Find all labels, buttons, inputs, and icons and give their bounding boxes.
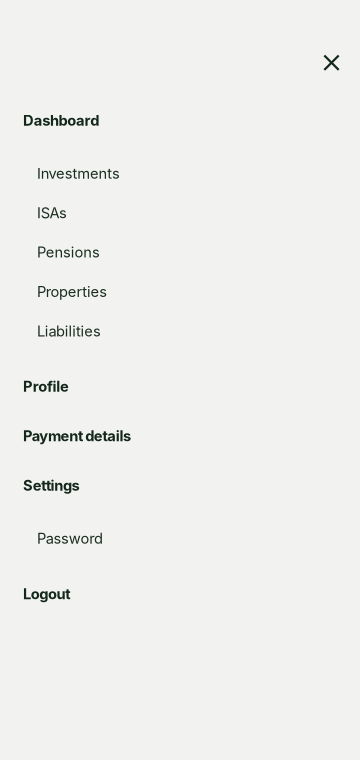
staticText: Settings xyxy=(23,477,80,494)
staticText: Liabilities xyxy=(37,322,101,340)
button[interactable]: Logout xyxy=(0,569,360,619)
staticText: Properties xyxy=(37,283,107,300)
staticText: Pensions xyxy=(37,243,100,261)
button[interactable]: Password xyxy=(0,519,360,558)
button[interactable]: Close xyxy=(309,41,353,85)
button[interactable]: ISAs xyxy=(0,193,360,233)
button[interactable]: Dashboard xyxy=(0,96,360,145)
staticText: Logout xyxy=(23,585,70,603)
staticText: Dashboard xyxy=(23,112,99,129)
staticText: Payment details xyxy=(23,427,131,445)
button[interactable]: Profile xyxy=(0,362,360,411)
button[interactable]: Settings xyxy=(0,461,360,510)
staticText: Password xyxy=(37,530,103,547)
staticText: Profile xyxy=(23,378,69,395)
button[interactable]: Payment details xyxy=(0,411,360,461)
staticText: ISAs xyxy=(37,204,67,222)
button[interactable]: Investments xyxy=(0,154,360,193)
button[interactable]: Properties xyxy=(0,272,360,311)
button[interactable]: Liabilities xyxy=(0,311,360,351)
button[interactable]: Pensions xyxy=(0,233,360,272)
staticText: Investments xyxy=(37,165,120,182)
